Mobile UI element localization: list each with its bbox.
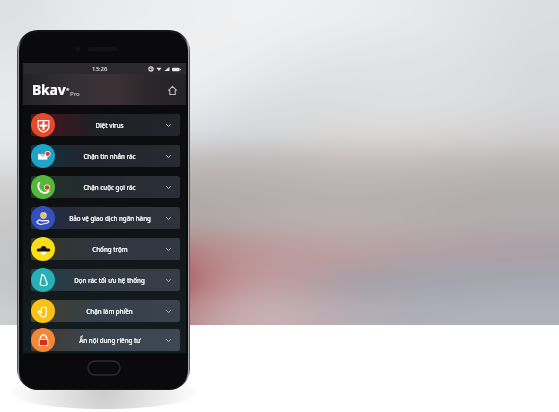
button[interactable]: Diệt virus <box>23 109 186 140</box>
staticText: Ẩn nội dung riêng tư <box>79 336 141 344</box>
button[interactable]: Bảo vệ giao dịch ngân hàng <box>23 202 186 233</box>
staticText: Bảo vệ giao dịch ngân hàng <box>69 214 151 222</box>
staticText: 13:26 <box>92 65 108 73</box>
button[interactable]: Ẩn nội dung riêng tư <box>23 326 186 353</box>
button[interactable]: Chống trộm <box>23 233 186 264</box>
button[interactable]: Chặn cuộc gọi rác <box>23 171 186 202</box>
button[interactable]: Chặn làm phiền <box>23 295 186 326</box>
staticText: Bkav <box>32 80 66 99</box>
staticText: Diệt virus <box>95 121 124 129</box>
staticText: Pro <box>70 90 80 98</box>
button[interactable]: Dọn rác tối ưu hệ thống <box>23 264 186 295</box>
staticText: Chặn tin nhắn rác <box>83 152 136 160</box>
staticText: Chặn cuộc gọi rác <box>83 183 136 191</box>
staticText: ® <box>66 87 70 92</box>
button[interactable]: Chặn tin nhắn rác <box>23 140 186 171</box>
staticText: Chặn làm phiền <box>86 307 133 315</box>
staticText: Chống trộm <box>92 245 128 253</box>
staticText: Dọn rác tối ưu hệ thống <box>74 276 145 284</box>
button[interactable]: Home <box>165 83 179 97</box>
